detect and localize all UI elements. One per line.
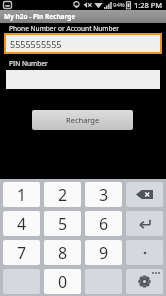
button[interactable]: Period [126,240,163,265]
staticText: 2 [58,184,68,206]
staticText: 0 [58,271,68,293]
button[interactable]: 5 [44,211,81,236]
button[interactable]: Keyboard settings [126,269,163,294]
staticText: Phone Number or Account Number [9,24,119,33]
staticText: 8 [58,242,68,264]
staticText: 7 [17,242,27,264]
staticText: PIN Number [9,59,48,68]
button[interactable]: 9 [85,240,122,265]
staticText: 9 [99,242,109,264]
button[interactable]: 2 [44,182,81,207]
button[interactable]: 0 [44,269,81,294]
button[interactable]: Recharge [32,110,133,130]
staticText: 3 [99,184,109,206]
button[interactable]: 8 [44,240,81,265]
button[interactable]: Enter [126,211,163,236]
button[interactable]: 1 [3,182,40,207]
button[interactable]: 5555555555 [6,35,160,52]
staticText: 1:28 PM [134,0,163,10]
staticText: 4 [17,213,27,235]
button[interactable]: 6 [85,211,122,236]
staticText: Recharge [66,115,100,125]
staticText: 94% [113,1,125,9]
staticText: 1 [17,184,27,206]
staticText: My h2o - Pin Recharge [4,12,76,21]
staticText: 6 [99,213,109,235]
staticText: 5555555555 [10,38,62,50]
button[interactable]: 3 [85,182,122,207]
button[interactable]: Backspace [126,182,163,207]
staticText: 5 [58,213,68,235]
button[interactable]: 4 [3,211,40,236]
button[interactable]: 7 [3,240,40,265]
